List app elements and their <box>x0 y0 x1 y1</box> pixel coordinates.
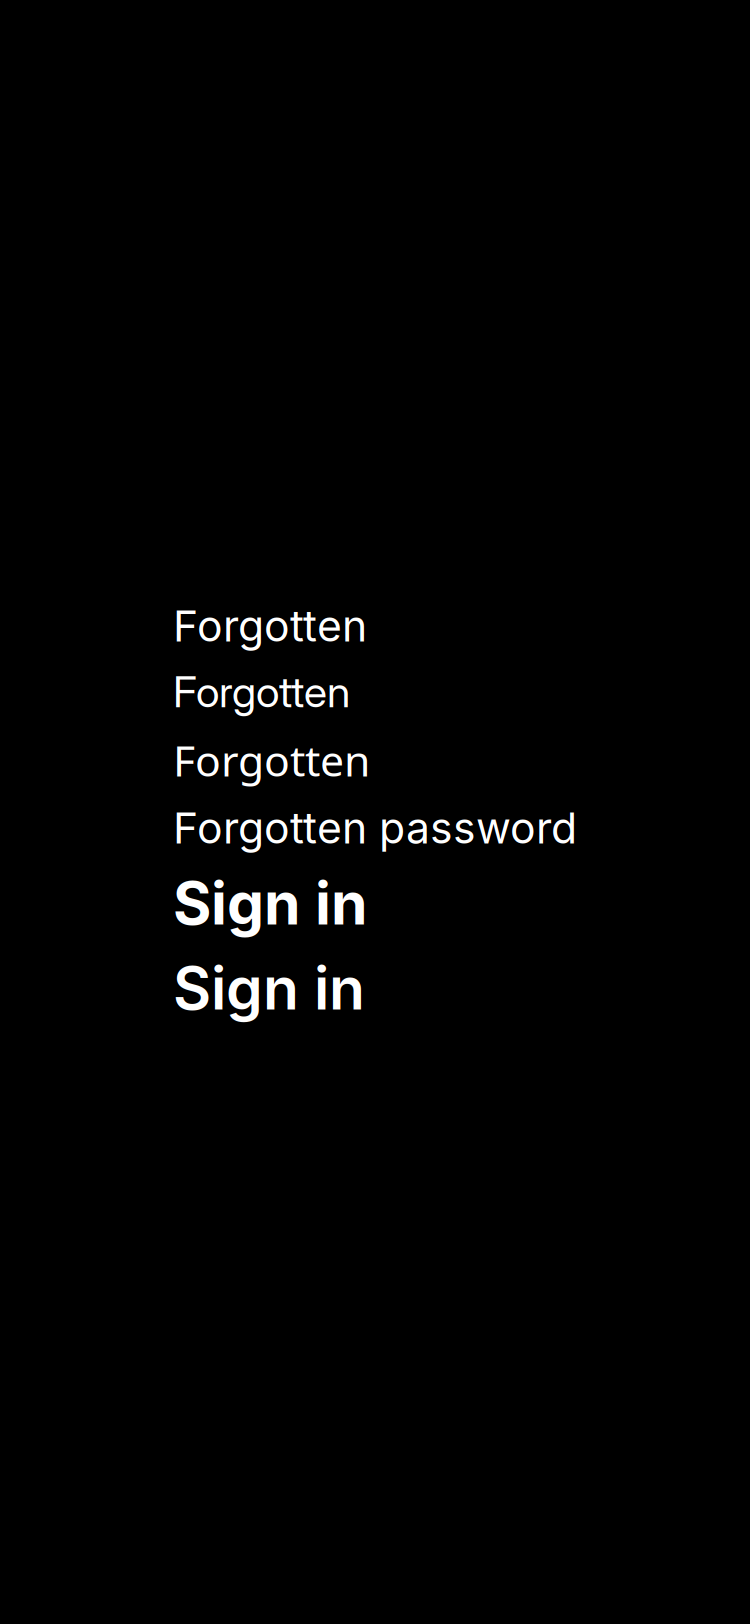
staticText: Forgotten <box>173 600 367 652</box>
staticText: Forgotten <box>173 731 370 788</box>
staticText: Forgotten <box>173 666 350 717</box>
staticText: Forgotten password <box>173 802 577 854</box>
staticText: Sign in <box>173 868 368 939</box>
staticText: Sign in <box>173 953 365 1024</box>
